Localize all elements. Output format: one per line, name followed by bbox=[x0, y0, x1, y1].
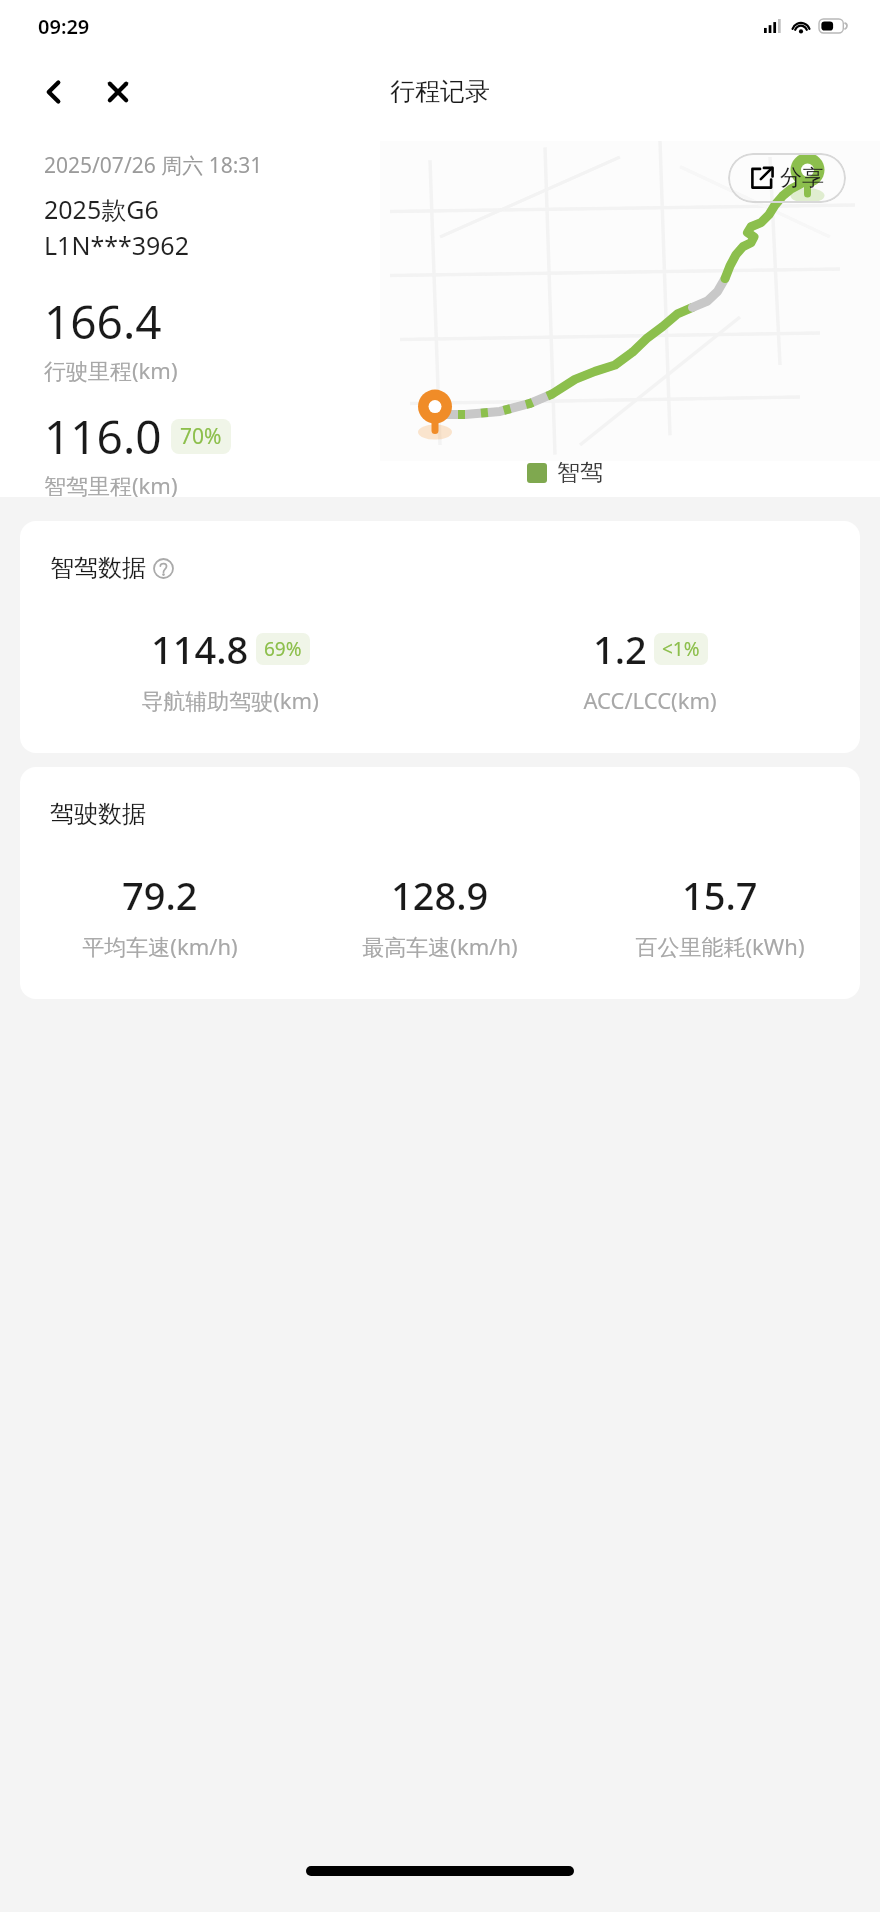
staticText: 09:29 bbox=[38, 13, 90, 40]
staticText: 114.8 bbox=[151, 623, 249, 675]
staticText: 70% bbox=[180, 422, 222, 451]
staticText: 15.7 bbox=[682, 869, 758, 921]
staticText: 116.0 bbox=[44, 405, 162, 468]
staticText: 导航辅助驾驶(km) bbox=[141, 685, 319, 715]
staticText: 平均车速(km/h) bbox=[82, 931, 238, 961]
button[interactable]: Back bbox=[28, 66, 80, 118]
staticText: L1N***3962 bbox=[44, 228, 189, 262]
button[interactable]: 驾驶数据 bbox=[20, 767, 860, 999]
staticText: 智驾里程(km) bbox=[44, 470, 178, 497]
staticText: 智驾数据 bbox=[50, 553, 146, 583]
staticText: 行程记录 bbox=[390, 76, 490, 107]
staticText: 行驶里程(km) bbox=[44, 355, 178, 385]
staticText: 79.2 bbox=[122, 869, 198, 921]
staticText: 166.4 bbox=[44, 290, 162, 353]
staticText: 128.9 bbox=[391, 869, 489, 921]
staticText: 智驾 bbox=[557, 458, 603, 487]
staticText: 1.2 bbox=[593, 623, 647, 675]
staticText: 2025/07/26 周六 18:31 bbox=[44, 151, 263, 180]
button[interactable]: Close bbox=[92, 66, 144, 118]
button[interactable]: 分享 bbox=[728, 153, 846, 203]
button[interactable]: 智驾数据 bbox=[20, 521, 860, 753]
staticText: 2025款G6 bbox=[44, 192, 159, 226]
staticText: 百公里能耗(kWh) bbox=[635, 931, 805, 961]
staticText: 最高车速(km/h) bbox=[362, 931, 518, 961]
staticText: 69% bbox=[264, 636, 302, 662]
staticText: ACC/LCC(km) bbox=[583, 685, 717, 715]
button[interactable]: Help bbox=[151, 556, 175, 580]
staticText: 驾驶数据 bbox=[50, 799, 146, 829]
staticText: <1% bbox=[662, 636, 700, 662]
staticText: 分享 bbox=[780, 164, 824, 192]
